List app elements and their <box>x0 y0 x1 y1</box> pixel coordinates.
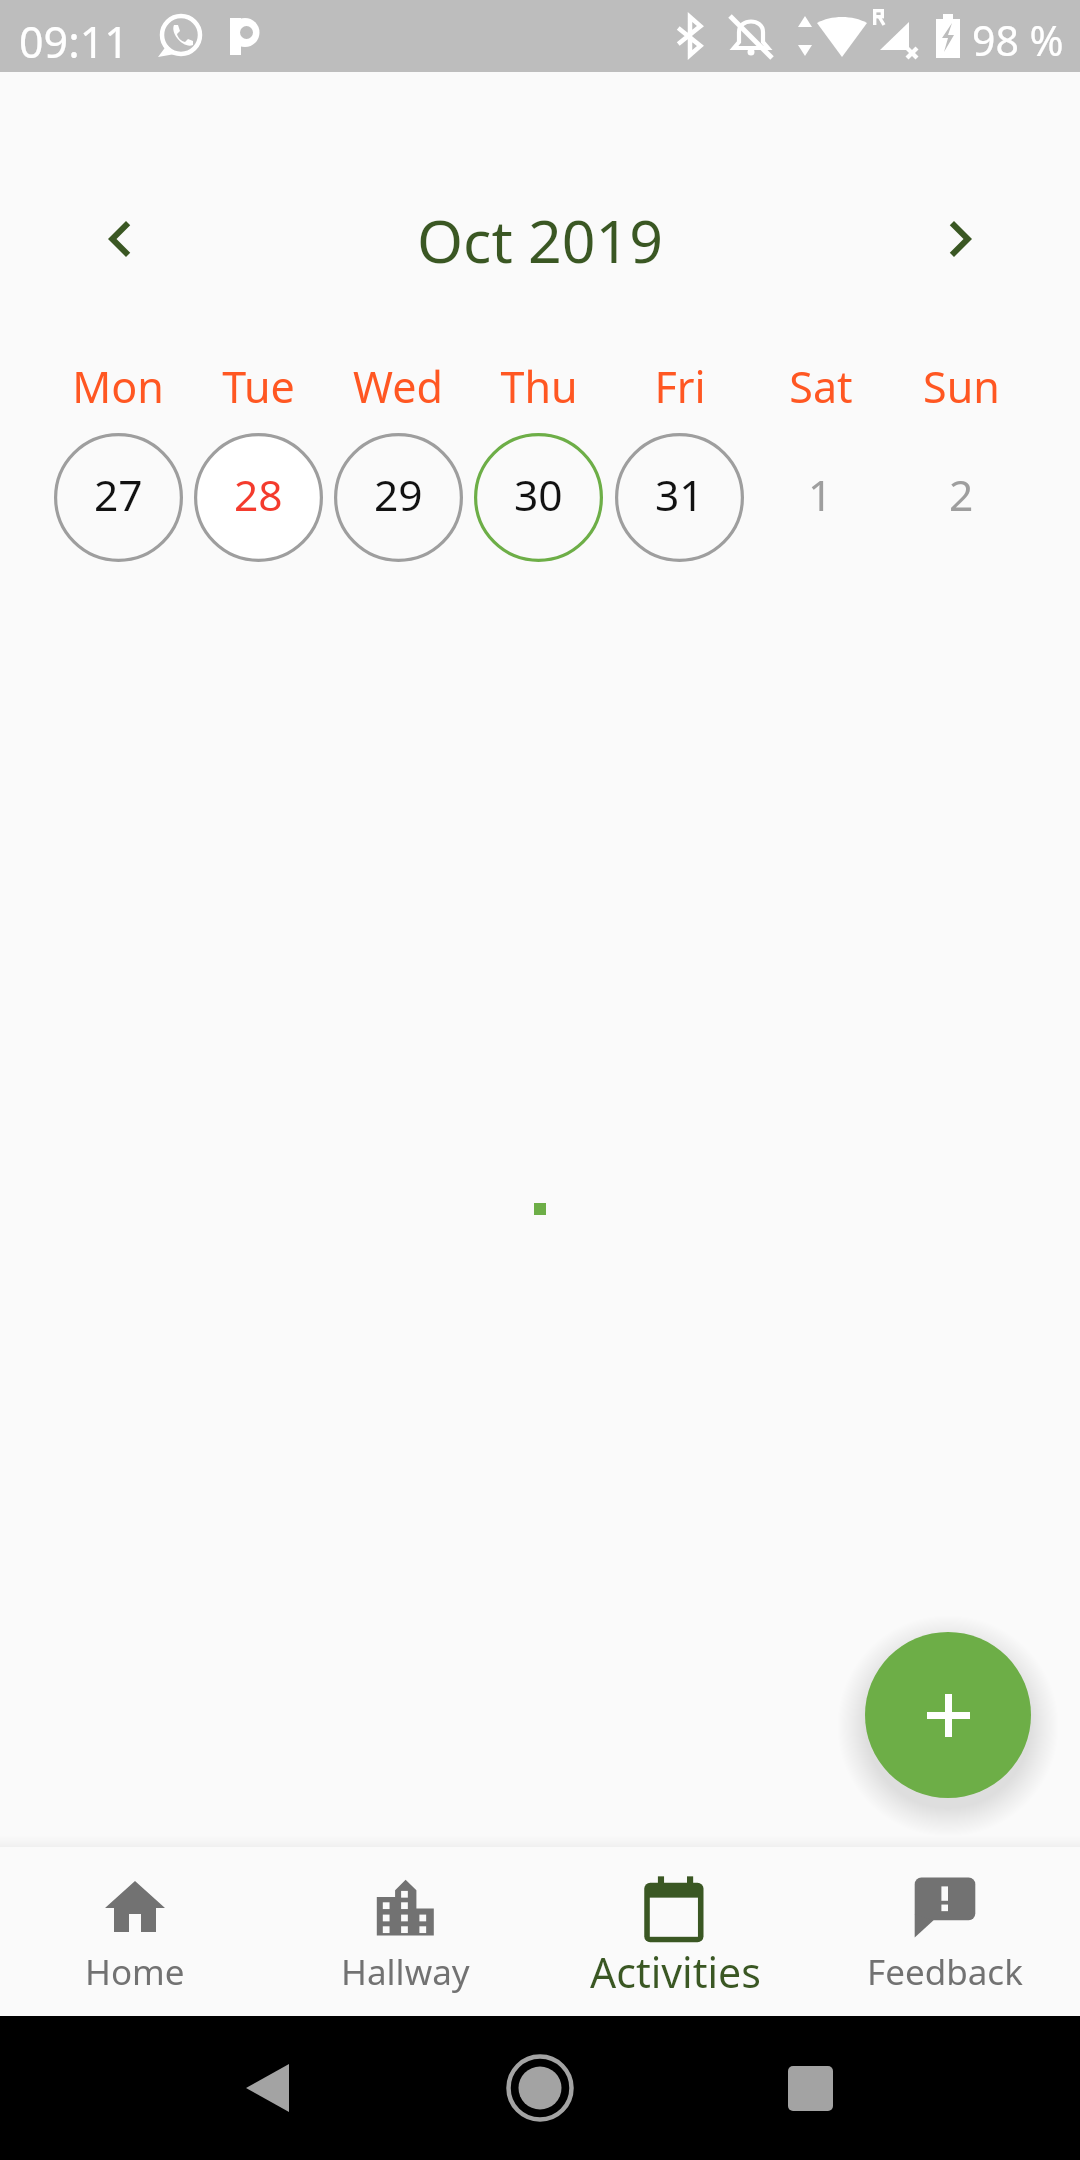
staticText: Fri <box>654 357 706 416</box>
staticText: Oct 2019 <box>417 200 664 280</box>
staticText: Wed <box>353 357 443 416</box>
button[interactable]: 31 <box>609 433 750 562</box>
staticText: Mon <box>72 357 164 416</box>
staticText: Feedback <box>867 1948 1023 1996</box>
button[interactable]: Feedback <box>810 1847 1080 2016</box>
staticText: Thu <box>500 357 578 416</box>
button[interactable]: 27 <box>48 433 188 562</box>
button[interactable]: 30 <box>468 433 609 562</box>
button[interactable]: 28 <box>188 433 328 562</box>
staticText: 29 <box>374 466 423 524</box>
staticText: 2 <box>949 466 974 524</box>
staticText: Home <box>85 1948 185 1996</box>
staticText: Hallway <box>341 1948 470 1996</box>
staticText: 31 <box>655 466 704 524</box>
button[interactable]: Home <box>500 2048 580 2128</box>
staticText: Tue <box>222 357 295 416</box>
button[interactable]: Next month <box>900 179 1020 299</box>
button[interactable]: Activities <box>540 1847 810 2016</box>
staticText: 09:11 <box>19 12 129 71</box>
button[interactable]: Add activity <box>865 1632 1031 1798</box>
button[interactable]: 29 <box>328 433 468 562</box>
staticText: 28 <box>234 466 283 524</box>
button[interactable]: 1 <box>750 433 891 562</box>
button[interactable]: Home <box>0 1847 270 2016</box>
staticText: 98 % <box>972 12 1064 68</box>
staticText: Sun <box>923 357 1000 416</box>
staticText: Sat <box>789 357 853 416</box>
staticText: 30 <box>514 466 563 524</box>
button[interactable]: Back <box>227 2048 307 2128</box>
staticText: 27 <box>94 466 143 524</box>
staticText: Activities <box>590 1944 761 2000</box>
staticText: 1 <box>808 466 833 524</box>
button[interactable]: Hallway <box>270 1847 540 2016</box>
button[interactable]: Previous month <box>60 179 180 299</box>
button[interactable]: Recent apps <box>770 2048 850 2128</box>
button[interactable]: 2 <box>891 433 1032 562</box>
